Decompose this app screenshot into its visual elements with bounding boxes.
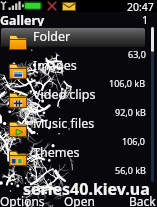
button[interactable]: Images — [0, 56, 157, 85]
staticText: 63,0 — [128, 48, 146, 60]
staticText: 92,0 kB — [115, 106, 146, 118]
staticText: Options — [0, 193, 45, 207]
other: Scroll position — [150, 27, 155, 182]
staticText: 106,0 — [122, 135, 146, 147]
staticText: Back — [129, 193, 156, 207]
staticText: 1 — [142, 12, 149, 26]
staticText: Images — [33, 57, 77, 74]
button[interactable]: Themes — [0, 143, 157, 172]
button[interactable]: Video clips — [0, 85, 157, 114]
staticText: Folder — [33, 28, 71, 45]
staticText: 56,0 kB — [115, 164, 146, 176]
staticText: series40.kiev.ua — [23, 178, 150, 200]
button[interactable]: Folder — [0, 27, 157, 56]
button[interactable]: Open — [53, 193, 105, 207]
staticText: Music files — [33, 115, 95, 132]
staticText: Open — [64, 193, 95, 207]
staticText: 20:47 — [127, 0, 154, 12]
staticText: Video clips — [33, 86, 96, 103]
button[interactable]: Options — [0, 193, 53, 207]
button[interactable]: Music files — [0, 114, 157, 143]
staticText: Themes — [33, 144, 80, 161]
staticText: Gallery — [0, 12, 45, 26]
staticText: 106,0 kB — [109, 77, 146, 89]
other: New message — [62, 2, 76, 11]
button[interactable]: Back — [105, 193, 157, 207]
other: Silent mode — [47, 1, 57, 11]
